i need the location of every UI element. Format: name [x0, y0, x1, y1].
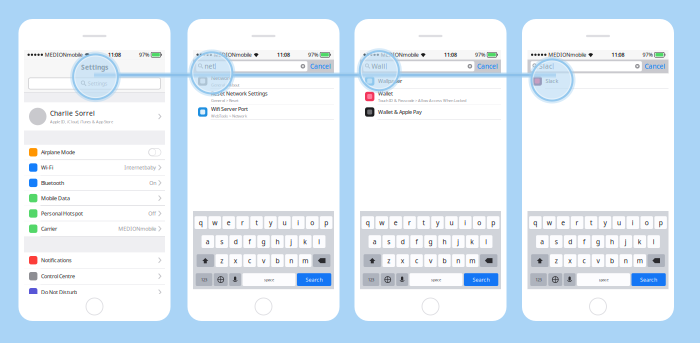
- button[interactable]: p: [654, 216, 667, 229]
- button[interactable]: d: [564, 235, 576, 248]
- button[interactable]: e: [389, 216, 402, 229]
- button[interactable]: o: [306, 216, 318, 229]
- button[interactable]: q: [195, 216, 207, 229]
- button[interactable]: e: [557, 216, 569, 229]
- button[interactable]: f: [243, 235, 256, 248]
- button[interactable]: r: [236, 216, 249, 229]
- button[interactable]: m: [299, 254, 311, 267]
- button[interactable]: x: [564, 254, 576, 267]
- button[interactable]: z: [382, 254, 395, 267]
- button[interactable]: b: [606, 254, 618, 267]
- button[interactable]: g: [592, 235, 604, 248]
- button[interactable]: u: [445, 216, 458, 229]
- button[interactable]: 123: [530, 273, 547, 286]
- button[interactable]: c: [243, 254, 256, 267]
- button[interactable]: q: [529, 216, 542, 229]
- button[interactable]: [381, 273, 395, 286]
- button[interactable]: m: [633, 254, 646, 267]
- button[interactable]: [480, 254, 497, 267]
- button[interactable]: [647, 254, 665, 267]
- button[interactable]: p: [487, 216, 499, 229]
- button[interactable]: u: [278, 216, 291, 229]
- button[interactable]: k: [633, 235, 646, 248]
- button[interactable]: g: [257, 235, 270, 248]
- button[interactable]: z: [550, 254, 562, 267]
- button[interactable]: v: [424, 254, 437, 267]
- button[interactable]: Cancel: [642, 62, 666, 71]
- button[interactable]: e: [222, 216, 235, 229]
- button[interactable]: Search: [631, 273, 666, 286]
- button[interactable]: b: [438, 254, 451, 267]
- button[interactable]: n: [285, 254, 298, 267]
- button[interactable]: s: [550, 235, 562, 248]
- button[interactable]: k: [299, 235, 311, 248]
- button[interactable]: [364, 254, 381, 267]
- button[interactable]: i: [627, 216, 639, 229]
- button[interactable]: [531, 254, 549, 267]
- button[interactable]: Airplane Mode: [24, 145, 165, 160]
- button[interactable]: n: [620, 254, 632, 267]
- button[interactable]: j: [620, 235, 632, 248]
- button[interactable]: x: [396, 254, 409, 267]
- button[interactable]: [564, 273, 576, 286]
- button[interactable]: 123: [363, 273, 379, 286]
- button[interactable]: Wi-Fi: [24, 160, 165, 175]
- button[interactable]: p: [320, 216, 332, 229]
- button[interactable]: f: [410, 235, 423, 248]
- button[interactable]: a: [536, 235, 549, 248]
- button[interactable]: c: [578, 254, 590, 267]
- button[interactable]: h: [606, 235, 618, 248]
- button[interactable]: m: [466, 254, 478, 267]
- button[interactable]: Charlie Sorrel: [24, 102, 165, 131]
- button[interactable]: q: [362, 216, 374, 229]
- button[interactable]: l: [647, 235, 660, 248]
- button[interactable]: n: [452, 254, 465, 267]
- button[interactable]: g: [424, 235, 437, 248]
- button[interactable]: t: [585, 216, 597, 229]
- button[interactable]: i: [459, 216, 472, 229]
- button[interactable]: c: [410, 254, 423, 267]
- button[interactable]: w: [208, 216, 221, 229]
- button[interactable]: w: [543, 216, 555, 229]
- button[interactable]: s: [382, 235, 395, 248]
- button[interactable]: j: [285, 235, 298, 248]
- button[interactable]: v: [592, 254, 604, 267]
- button[interactable]: a: [202, 235, 214, 248]
- button[interactable]: h: [271, 235, 284, 248]
- button[interactable]: o: [473, 216, 485, 229]
- button[interactable]: Reset Network Settings: [193, 89, 334, 104]
- button[interactable]: j: [452, 235, 465, 248]
- button[interactable]: Wallet & Apple Pay: [360, 104, 501, 120]
- button[interactable]: x: [229, 254, 242, 267]
- button[interactable]: space: [409, 273, 462, 286]
- button[interactable]: f: [578, 235, 590, 248]
- button[interactable]: k: [466, 235, 478, 248]
- button[interactable]: d: [396, 235, 409, 248]
- button[interactable]: Do Not Disturb: [24, 284, 165, 300]
- button[interactable]: Search: [464, 273, 498, 286]
- button[interactable]: [313, 254, 330, 267]
- button[interactable]: Wallet: [360, 89, 501, 104]
- button[interactable]: y: [599, 216, 611, 229]
- button[interactable]: 123: [196, 273, 212, 286]
- button[interactable]: Carrier: [24, 221, 165, 237]
- button[interactable]: Notifications: [24, 252, 165, 268]
- button[interactable]: [396, 273, 408, 286]
- button[interactable]: space: [577, 273, 630, 286]
- button[interactable]: r: [403, 216, 416, 229]
- button[interactable]: s: [215, 235, 228, 248]
- button[interactable]: Control Centre: [24, 268, 165, 284]
- button[interactable]: r: [571, 216, 583, 229]
- button[interactable]: b: [271, 254, 284, 267]
- button[interactable]: Bluetooth: [24, 175, 165, 191]
- button[interactable]: t: [250, 216, 263, 229]
- button[interactable]: Wallpaper: [360, 73, 501, 89]
- button[interactable]: h: [438, 235, 451, 248]
- button[interactable]: l: [480, 235, 492, 248]
- button[interactable]: Search: [297, 273, 331, 286]
- button[interactable]: Slack: [527, 73, 668, 89]
- button[interactable]: a: [369, 235, 381, 248]
- button[interactable]: l: [313, 235, 325, 248]
- button[interactable]: v: [257, 254, 270, 267]
- button[interactable]: y: [431, 216, 444, 229]
